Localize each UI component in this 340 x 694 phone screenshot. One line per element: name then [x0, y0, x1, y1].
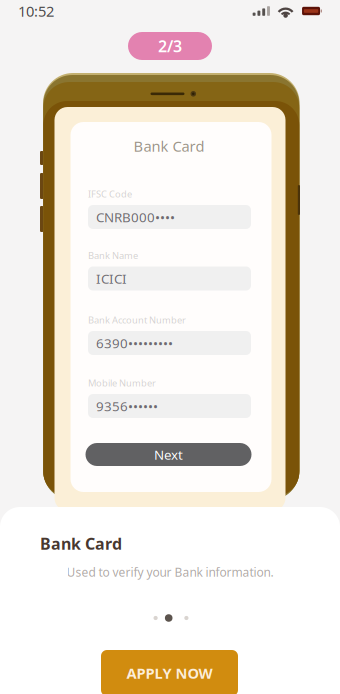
staticText: 10:52 [18, 1, 54, 21]
staticText: Mobile Number [88, 377, 156, 389]
staticText: 2/3 [158, 35, 182, 57]
staticText: Bank Name [88, 249, 138, 262]
staticText: Used to verify your Bank information. [66, 564, 273, 580]
staticText: Bank Card [133, 136, 204, 156]
staticText: Bank Account Number [88, 314, 186, 326]
staticText: 9356•••••• [96, 397, 158, 415]
staticText: IFSC Code [88, 188, 132, 200]
staticText: ICICI [96, 270, 127, 287]
staticText: Bank Card [40, 533, 122, 554]
button[interactable]: APPLY NOW [101, 650, 238, 694]
staticText: 6390••••••••• [96, 334, 173, 352]
staticText: APPLY NOW [126, 663, 212, 683]
staticText: CNRB000•••• [96, 208, 175, 226]
staticText: Next [154, 446, 183, 463]
button[interactable]: Next [85, 443, 251, 466]
